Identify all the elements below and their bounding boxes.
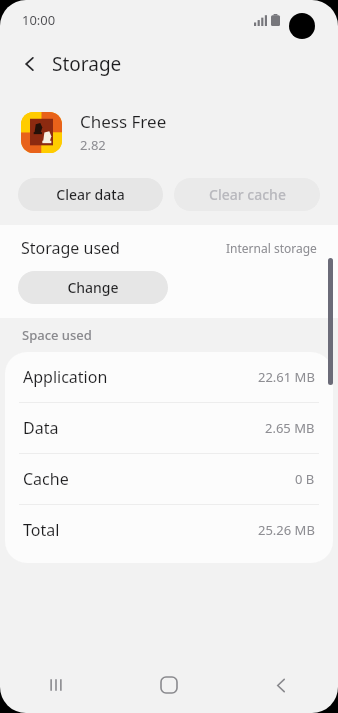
button[interactable]: Storage used bbox=[0, 225, 338, 271]
staticText: Cache bbox=[23, 468, 69, 490]
button[interactable]: Recents bbox=[0, 657, 112, 713]
staticText: Application bbox=[23, 366, 108, 388]
staticText: Storage bbox=[52, 51, 122, 77]
button[interactable]: Clear data bbox=[18, 178, 163, 211]
staticText: 2.65 MB bbox=[265, 419, 315, 437]
staticText: Clear cache bbox=[209, 185, 286, 204]
staticText: 22.61 MB bbox=[258, 368, 315, 386]
staticText: Space used bbox=[22, 326, 92, 344]
staticText: 25.26 MB bbox=[258, 521, 315, 539]
button[interactable]: Home bbox=[112, 657, 225, 713]
staticText: Change bbox=[67, 278, 119, 297]
staticText: 0 B bbox=[295, 470, 315, 488]
staticText: Storage used bbox=[21, 237, 120, 259]
button[interactable]: Data bbox=[5, 403, 333, 453]
button[interactable]: Back bbox=[12, 46, 48, 82]
staticText: Total bbox=[23, 519, 60, 541]
button[interactable]: Back bbox=[225, 657, 338, 713]
button[interactable]: Total bbox=[5, 505, 333, 555]
button[interactable]: Change bbox=[18, 271, 168, 304]
button[interactable]: Application bbox=[5, 352, 333, 402]
staticText: Clear data bbox=[56, 185, 125, 204]
staticText: Data bbox=[23, 417, 59, 439]
staticText: Chess Free bbox=[80, 110, 167, 133]
staticText: 10:00 bbox=[22, 11, 56, 29]
button[interactable]: Cache bbox=[5, 454, 333, 504]
staticText: 2.82 bbox=[80, 136, 106, 154]
button[interactable]: Clear cache bbox=[174, 178, 320, 211]
staticText: Internal storage bbox=[226, 240, 317, 256]
